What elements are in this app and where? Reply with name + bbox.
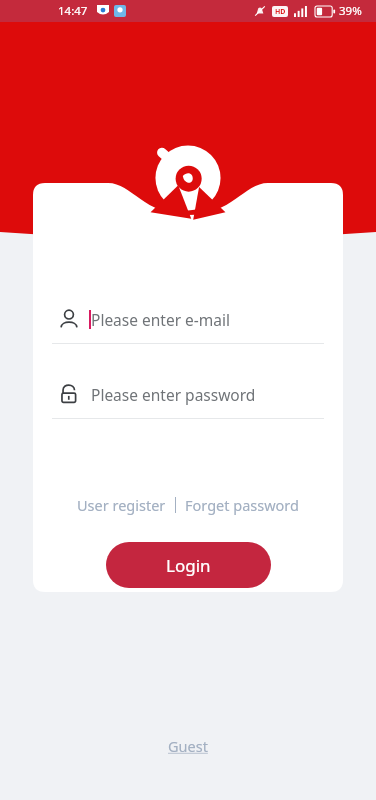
staticText: Please enter e-mail	[91, 309, 231, 330]
staticText: Please enter password	[91, 384, 256, 405]
button[interactable]: E-mail	[58, 295, 318, 343]
staticText: User register	[77, 495, 166, 515]
button[interactable]: Guest	[160, 728, 216, 764]
staticText: HD	[275, 7, 286, 17]
staticText: 39%	[339, 3, 362, 19]
button[interactable]: Login	[106, 542, 271, 588]
staticText: 14:47	[58, 3, 88, 19]
staticText: Guest	[168, 736, 208, 756]
button[interactable]: User register	[73, 491, 170, 519]
staticText: Login	[166, 554, 211, 577]
staticText: Forget password	[185, 495, 299, 515]
other: Password	[58, 383, 80, 405]
button[interactable]: Password	[58, 370, 318, 418]
other: E-mail	[58, 308, 80, 330]
button[interactable]: Forget password	[181, 491, 303, 519]
